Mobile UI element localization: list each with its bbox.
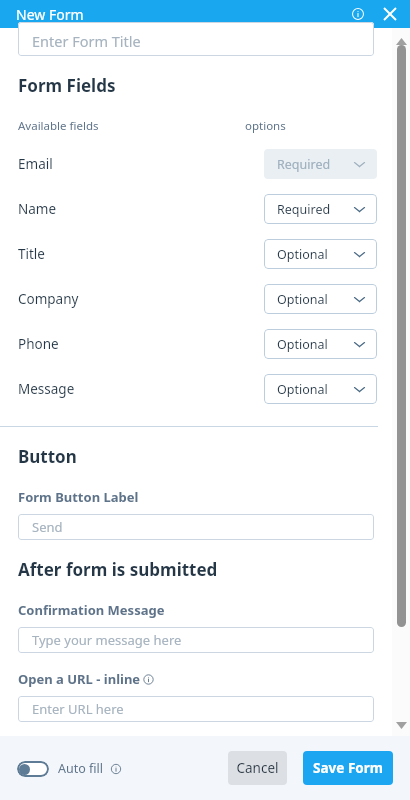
staticText: Send [32, 518, 63, 536]
staticText: Company [18, 290, 79, 308]
button[interactable]: Scroll down [394, 718, 408, 732]
button[interactable]: Optional [264, 329, 377, 359]
staticText: Enter Form Title [32, 31, 141, 51]
staticText: Button [18, 445, 77, 468]
button[interactable]: Cancel [228, 751, 287, 785]
staticText: Type your message here [32, 631, 182, 649]
button[interactable]: Close [380, 4, 400, 24]
staticText: options [245, 118, 286, 134]
staticText: Optional [277, 381, 354, 398]
staticText: Form Fields [18, 74, 116, 97]
staticText: Optional [277, 291, 354, 308]
button[interactable]: Scroll up [394, 34, 408, 48]
button[interactable]: Required [264, 149, 377, 179]
staticText: After form is submitted [18, 558, 218, 581]
button[interactable]: Information [348, 4, 368, 24]
staticText: Message [18, 380, 75, 398]
staticText: Open a URL - inline [18, 670, 141, 688]
button[interactable]: Required [264, 194, 377, 224]
staticText: Enter URL here [32, 700, 124, 718]
staticText: Optional [277, 336, 354, 353]
staticText: Confirmation Message [18, 601, 165, 619]
staticText: Required [277, 201, 354, 218]
button[interactable]: Type your message here [18, 627, 374, 653]
button[interactable]: Auto fill [17, 760, 123, 777]
button[interactable]: Optional [264, 239, 377, 269]
staticText: Required [277, 156, 354, 173]
button[interactable]: Save Form [303, 751, 393, 785]
button[interactable]: Optional [264, 284, 377, 314]
staticText: Name [18, 200, 57, 218]
button[interactable]: About open a URL inline [141, 672, 156, 687]
staticText: Available fields [18, 118, 99, 134]
other: About auto fill [109, 762, 123, 776]
staticText: Phone [18, 335, 59, 353]
button[interactable]: Scrollbar [397, 45, 406, 627]
staticText: Title [18, 245, 45, 263]
staticText: Form Button Label [18, 488, 139, 506]
button[interactable]: Enter URL here [18, 696, 374, 722]
staticText: Optional [277, 246, 354, 263]
button[interactable]: Send [18, 514, 374, 540]
staticText: Email [18, 155, 53, 173]
staticText: New Form [16, 5, 84, 24]
staticText: Cancel [236, 759, 279, 777]
button[interactable]: Enter Form Title [18, 22, 374, 56]
staticText: Auto fill [58, 760, 104, 777]
staticText: Save Form [313, 759, 383, 777]
button[interactable]: Optional [264, 374, 377, 404]
